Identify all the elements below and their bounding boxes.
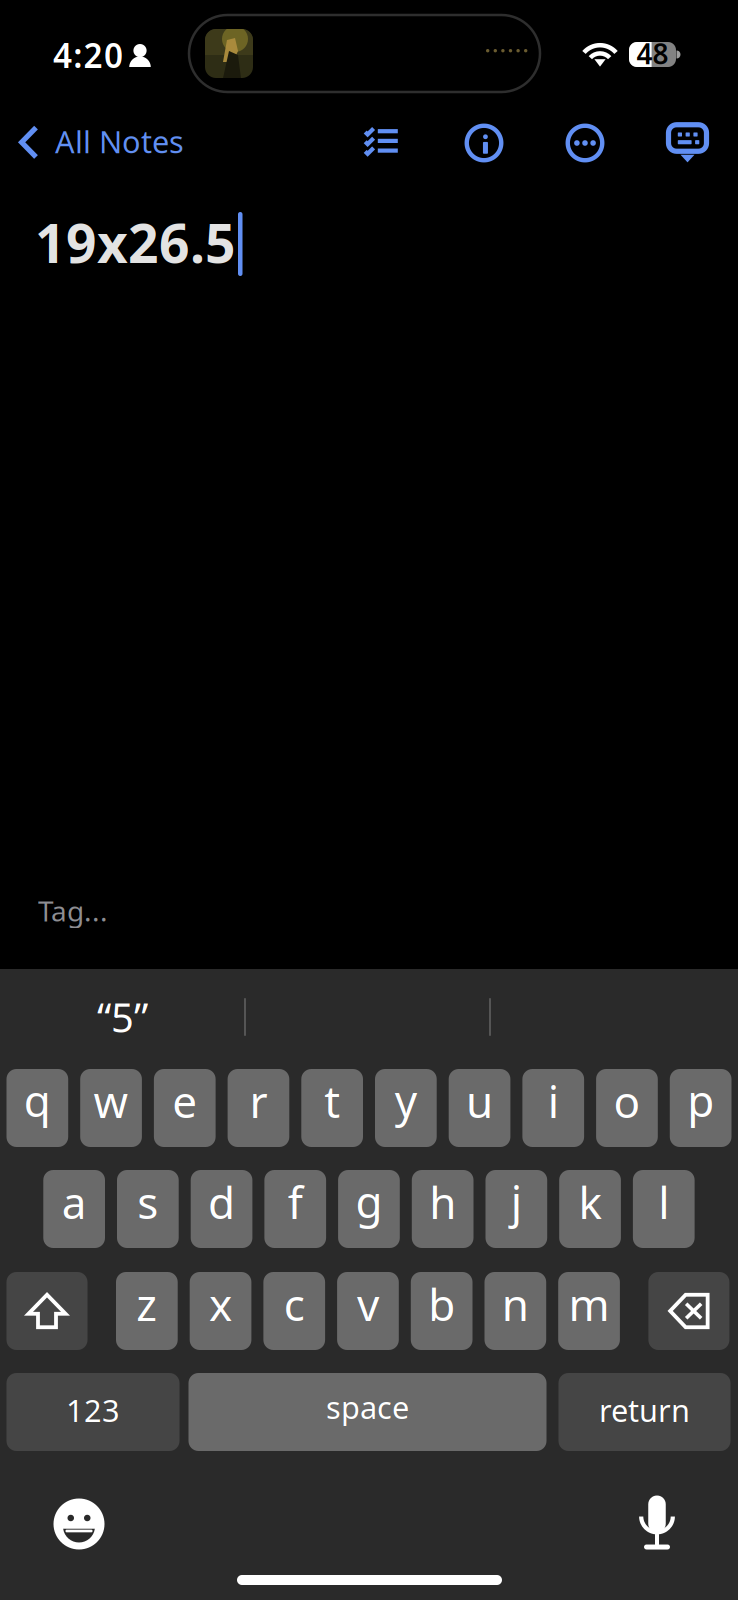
button[interactable]: Checklist: [343, 113, 403, 169]
button[interactable]: More: [555, 115, 615, 171]
button[interactable]: w: [80, 1069, 142, 1147]
staticText: f: [288, 1173, 303, 1231]
staticText: All Notes: [55, 121, 184, 162]
button[interactable]: x: [190, 1272, 251, 1350]
staticText: g: [355, 1172, 382, 1230]
button[interactable]: y: [375, 1069, 437, 1147]
staticText: m: [569, 1275, 610, 1333]
staticText: q: [24, 1071, 51, 1129]
staticText: d: [208, 1173, 235, 1231]
button[interactable]: o: [596, 1069, 658, 1147]
staticText: a: [62, 1173, 87, 1231]
button[interactable]: g: [338, 1170, 400, 1248]
button[interactable]: e: [154, 1069, 216, 1147]
staticText: x: [209, 1275, 232, 1333]
staticText: “5”: [97, 990, 148, 1043]
button[interactable]: z: [116, 1272, 178, 1350]
staticText: 48: [636, 35, 668, 72]
button[interactable]: s: [117, 1170, 179, 1248]
button[interactable]: f: [264, 1170, 326, 1248]
button[interactable]: d: [191, 1170, 252, 1248]
button[interactable]: 123: [6, 1373, 179, 1451]
button[interactable]: Shift: [6, 1272, 87, 1350]
button[interactable]: m: [558, 1272, 620, 1350]
button[interactable]: b: [411, 1272, 472, 1350]
button[interactable]: c: [263, 1272, 325, 1350]
staticText: l: [658, 1173, 669, 1231]
button[interactable]: j: [485, 1170, 547, 1248]
staticText: y: [395, 1071, 417, 1129]
staticText: u: [466, 1072, 493, 1130]
button[interactable]: Info: [454, 115, 514, 171]
button[interactable]: return: [558, 1373, 730, 1451]
staticText: v: [357, 1275, 379, 1333]
button[interactable]: t: [301, 1069, 363, 1147]
button[interactable]: r: [228, 1069, 289, 1147]
button[interactable]: All Notes: [0, 116, 230, 174]
staticText: t: [324, 1072, 340, 1130]
staticText: r: [249, 1072, 267, 1130]
staticText: w: [94, 1072, 129, 1130]
button[interactable]: i: [522, 1069, 584, 1147]
button[interactable]: Dictate: [618, 1475, 696, 1553]
button[interactable]: space: [188, 1373, 546, 1451]
staticText: n: [502, 1275, 529, 1333]
button[interactable]: Emoji: [40, 1485, 118, 1563]
staticText: c: [284, 1275, 305, 1333]
staticText: i: [548, 1072, 559, 1130]
button[interactable]: q: [6, 1069, 68, 1147]
staticText: return: [599, 1390, 690, 1430]
staticText: 123: [66, 1390, 120, 1430]
staticText: o: [613, 1072, 640, 1130]
button[interactable]: u: [449, 1069, 510, 1147]
button[interactable]: l: [633, 1170, 695, 1248]
button[interactable]: a: [43, 1170, 105, 1248]
staticText: space: [326, 1387, 409, 1427]
staticText: 19x26.5: [35, 207, 236, 278]
staticText: z: [136, 1275, 157, 1333]
staticText: e: [172, 1072, 197, 1130]
button[interactable]: h: [412, 1170, 473, 1248]
staticText: j: [511, 1172, 522, 1230]
button[interactable]: p: [670, 1069, 731, 1147]
staticText: h: [429, 1173, 456, 1231]
button[interactable]: v: [337, 1272, 399, 1350]
button[interactable]: Hide Keyboard: [654, 110, 714, 166]
button[interactable]: Delete: [648, 1272, 729, 1350]
staticText: s: [137, 1173, 158, 1231]
staticText: 4:20: [53, 33, 123, 77]
button[interactable]: k: [559, 1170, 621, 1248]
button[interactable]: “5”: [0, 986, 245, 1048]
button[interactable]: n: [484, 1272, 546, 1350]
staticText: p: [687, 1071, 714, 1129]
staticText: Tag...: [38, 892, 108, 929]
staticText: k: [578, 1173, 601, 1231]
staticText: b: [428, 1275, 455, 1333]
